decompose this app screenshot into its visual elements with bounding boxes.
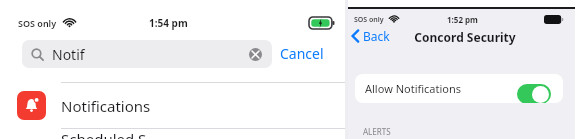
staticText: Scheduled S — [61, 129, 147, 139]
staticText: SOS only — [18, 17, 57, 29]
staticText: ALERTS — [363, 126, 391, 137]
staticText: Concord Security — [414, 29, 516, 45]
staticText: Cancel — [280, 44, 324, 63]
button[interactable]: Back — [351, 27, 390, 45]
staticText: Back — [363, 28, 390, 44]
staticText: SOS only — [354, 15, 384, 25]
staticText: Allow Notifications — [365, 81, 462, 96]
button[interactable]: Notifications — [6, 83, 345, 128]
staticText: 1:52 pm — [447, 14, 478, 25]
button[interactable]: Notif — [22, 40, 272, 68]
button[interactable]: Allow Notifications toggle, on — [517, 84, 551, 103]
staticText: Notif — [52, 45, 85, 64]
staticText: Notifications — [61, 96, 151, 116]
button[interactable]: Allow Notifications — [355, 74, 563, 103]
staticText: 1:54 pm — [149, 16, 188, 30]
button[interactable]: Scheduled S — [6, 129, 345, 139]
button[interactable]: Cancel — [278, 42, 326, 65]
button[interactable]: Clear text — [249, 48, 262, 61]
